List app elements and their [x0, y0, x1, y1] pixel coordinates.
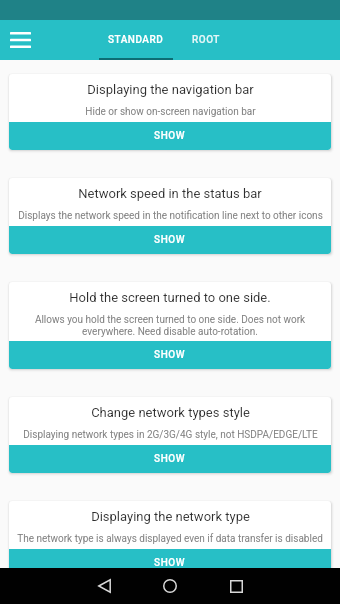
- button[interactable]: Recent apps: [203, 568, 269, 604]
- button[interactable]: Back: [71, 568, 137, 604]
- button[interactable]: SHOW: [9, 445, 331, 473]
- staticText: Displaying the network type: [91, 509, 250, 524]
- button[interactable]: STANDARD: [99, 20, 173, 60]
- staticText: Displaying the navigation bar: [87, 82, 254, 97]
- button[interactable]: SHOW: [9, 122, 331, 150]
- staticText: SHOW: [154, 453, 186, 465]
- staticText: SHOW: [154, 234, 186, 246]
- button[interactable]: SHOW: [9, 549, 331, 568]
- staticText: SHOW: [154, 349, 186, 361]
- button[interactable]: SHOW: [9, 226, 331, 254]
- staticText: SHOW: [154, 130, 186, 142]
- staticText: Displays the network speed in the notifi…: [18, 210, 323, 222]
- staticText: Displaying network types in 2G/3G/4G sty…: [23, 429, 318, 441]
- button[interactable]: Menu: [2, 22, 38, 58]
- staticText: Change network types style: [91, 405, 250, 420]
- staticText: The network type is always displayed eve…: [17, 533, 323, 545]
- button[interactable]: Home: [137, 568, 203, 604]
- button[interactable]: SHOW: [9, 341, 331, 369]
- staticText: Network speed in the status bar: [78, 186, 262, 201]
- staticText: ROOT: [192, 34, 220, 46]
- staticText: SHOW: [154, 557, 186, 568]
- staticText: Hold the screen turned to one side.: [69, 290, 271, 305]
- button[interactable]: ROOT: [173, 20, 239, 60]
- staticText: Allows you hold the screen turned to one…: [16, 314, 324, 337]
- staticText: Hide or show on-screen navigation bar: [85, 106, 256, 118]
- staticText: STANDARD: [108, 34, 164, 46]
